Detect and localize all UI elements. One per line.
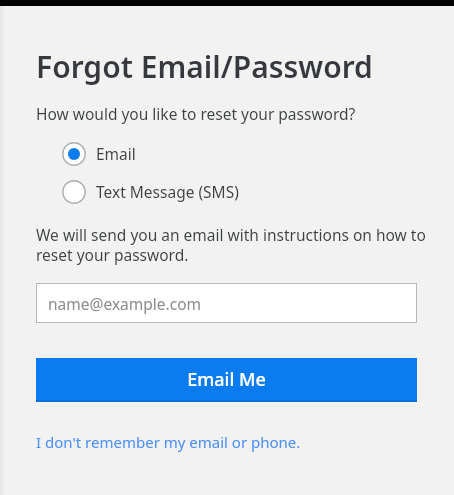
staticText: We will send you an email with instructi… bbox=[36, 224, 426, 266]
staticText: How would you like to reset your passwor… bbox=[36, 103, 356, 124]
staticText: Email Me bbox=[187, 367, 266, 392]
staticText: Forgot Email/Password bbox=[36, 46, 373, 87]
staticText: I don't remember my email or phone. bbox=[36, 432, 301, 452]
button[interactable]: Email Me bbox=[36, 358, 417, 402]
button[interactable]: I don't remember my email or phone. bbox=[36, 432, 301, 452]
button[interactable]: name@example.com bbox=[36, 283, 417, 323]
button[interactable]: Email bbox=[36, 138, 136, 169]
staticText: Text Message (SMS) bbox=[96, 181, 239, 202]
staticText: name@example.com bbox=[48, 293, 202, 314]
button[interactable]: Text Message (SMS) bbox=[36, 176, 239, 207]
staticText: Email bbox=[96, 143, 136, 164]
